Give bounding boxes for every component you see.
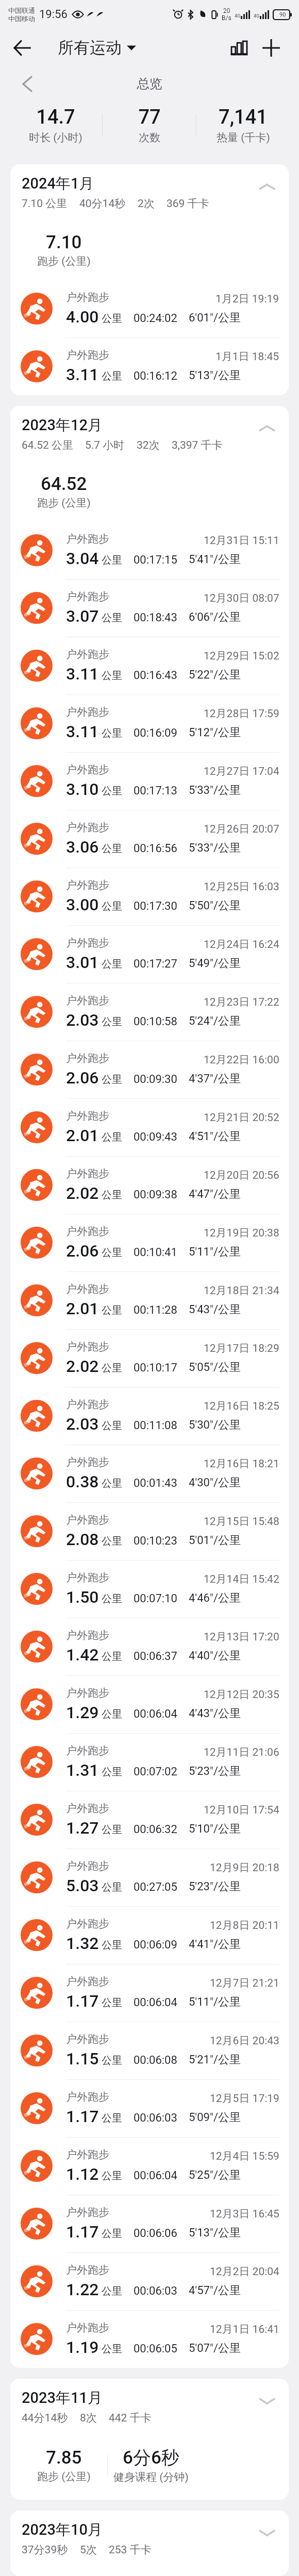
staticText: 户外跑步 (66, 2032, 109, 2046)
staticText: 00:24:02 (134, 312, 177, 325)
button[interactable]: 2023年10月 (10, 2511, 289, 2556)
button[interactable]: 户外跑步 (10, 2310, 289, 2368)
staticText: 户外跑步 (66, 1744, 109, 1757)
button[interactable]: 户外跑步 (10, 1849, 289, 1906)
button[interactable]: 户外跑步 (10, 983, 289, 1041)
staticText: 4'41"/公里 (189, 1937, 241, 1952)
staticText: 00:17:27 (134, 957, 177, 971)
staticText: 户外跑步 (66, 1513, 109, 1527)
button[interactable]: 统计图表 (226, 35, 253, 61)
button[interactable]: 户外跑步 (10, 1964, 289, 2022)
staticText: 12月12日 20:35 (204, 1688, 279, 1701)
staticText: 公里 (102, 1419, 122, 1432)
staticText: 户外跑步 (66, 1282, 109, 1296)
staticText: 12月11日 21:06 (204, 1745, 279, 1759)
button[interactable]: 户外跑步 (10, 2195, 289, 2252)
button[interactable]: 2023年11月 (10, 2379, 289, 2425)
button[interactable]: 户外跑步 (10, 1791, 289, 1849)
staticText: 健身课程 (分钟) (113, 2470, 189, 2484)
staticText: 00:11:08 (134, 1419, 177, 1432)
staticText: 12月2日 20:04 (210, 2265, 279, 2278)
button[interactable]: 户外跑步 (10, 694, 289, 752)
staticText: 5'12"/公里 (189, 725, 241, 740)
button[interactable]: 户外跑步 (10, 810, 289, 868)
staticText: 3.06 (66, 837, 99, 857)
button[interactable]: 户外跑步 (10, 579, 289, 637)
staticText: 5'49"/公里 (189, 956, 241, 971)
staticText: 19:56 (39, 8, 68, 21)
button[interactable]: 户外跑步 (10, 1156, 289, 1214)
button[interactable]: 户外跑步 (10, 1733, 289, 1791)
staticText: 1.17 (66, 1991, 99, 2011)
button[interactable]: 户外跑步 (10, 1214, 289, 1272)
button[interactable]: 户外跑步 (10, 521, 289, 579)
staticText: 户外跑步 (66, 1859, 109, 1873)
staticText: 公里 (102, 2227, 122, 2240)
staticText: 00:07:02 (134, 1765, 177, 1778)
staticText: 中国联通 (8, 6, 35, 14)
staticText: 12月8日 20:11 (210, 1919, 279, 1932)
staticText: 5.7 小时 (85, 438, 125, 452)
button[interactable]: 户外跑步 (10, 637, 289, 694)
button[interactable]: 户外跑步 (10, 1041, 289, 1098)
button[interactable]: 返回 (12, 38, 32, 58)
button[interactable]: 户外跑步 (10, 925, 289, 983)
staticText: 2.03 (66, 1010, 99, 1030)
staticText: 20 (223, 7, 230, 14)
button[interactable]: 户外跑步 (10, 1675, 289, 1733)
staticText: 00:10:58 (134, 1015, 177, 1028)
staticText: 6'06"/公里 (189, 610, 241, 624)
button[interactable]: 户外跑步 (10, 868, 289, 925)
staticText: 公里 (102, 2343, 122, 2355)
staticText: 7.10 公里 (22, 197, 68, 210)
staticText: 5'23"/公里 (189, 1764, 241, 1778)
button[interactable]: 户外跑步 (10, 2137, 289, 2195)
staticText: 公里 (102, 2170, 122, 2182)
staticText: 12月16日 18:21 (204, 1457, 279, 1470)
button[interactable]: 户外跑步 (10, 1272, 289, 1329)
staticText: 公里 (102, 1766, 122, 1778)
staticText: 公里 (102, 1362, 122, 1375)
staticText: 1.31 (66, 1760, 99, 1780)
staticText: 00:09:38 (134, 1188, 177, 1201)
button[interactable]: 户外跑步 (10, 1445, 289, 1502)
button[interactable]: 户外跑步 (10, 752, 289, 810)
staticText: 00:01:43 (134, 1477, 177, 1490)
button[interactable]: 户外跑步 (10, 1329, 289, 1387)
staticText: 00:16:12 (134, 369, 177, 383)
button[interactable]: 户外跑步 (10, 1387, 289, 1445)
button[interactable]: 户外跑步 (10, 1502, 289, 1560)
button[interactable]: 户外跑步 (10, 280, 289, 337)
staticText: 00:06:04 (134, 2169, 177, 2182)
staticText: 2.02 (66, 1183, 99, 1203)
staticText: 3.11 (66, 365, 99, 384)
staticText: 1.15 (66, 2049, 99, 2069)
button[interactable]: 添加 (258, 35, 285, 61)
staticText: 1.42 (66, 1645, 99, 1665)
button[interactable]: 户外跑步 (10, 337, 289, 395)
button[interactable]: 户外跑步 (10, 2079, 289, 2137)
staticText: 户外跑步 (66, 1109, 109, 1123)
staticText: 跑步 (公里) (37, 496, 91, 510)
staticText: 00:06:04 (134, 1707, 177, 1721)
staticText: 00:07:10 (134, 1592, 177, 1605)
staticText: 1.29 (66, 1703, 99, 1722)
button[interactable]: 户外跑步 (10, 1560, 289, 1618)
button[interactable]: 2024年1月 (10, 164, 289, 210)
staticText: 00:11:28 (134, 1303, 177, 1317)
button[interactable]: 户外跑步 (10, 1906, 289, 1964)
button[interactable]: 户外跑步 (10, 1098, 289, 1156)
staticText: 户外跑步 (66, 878, 109, 892)
staticText: 6分6秒 (123, 2446, 179, 2469)
button[interactable]: 所有运动 (58, 38, 136, 58)
staticText: 3.11 (66, 664, 99, 684)
staticText: 253 千卡 (109, 2543, 152, 2556)
button[interactable]: 2023年12月 (10, 406, 289, 452)
button[interactable]: 上一页 (15, 72, 39, 96)
button[interactable]: 户外跑步 (10, 1618, 289, 1675)
button[interactable]: 户外跑步 (10, 2022, 289, 2079)
staticText: 4'47"/公里 (189, 1187, 241, 1201)
staticText: 户外跑步 (66, 590, 109, 603)
staticText: 3,397 千卡 (172, 438, 223, 452)
button[interactable]: 户外跑步 (10, 2252, 289, 2310)
